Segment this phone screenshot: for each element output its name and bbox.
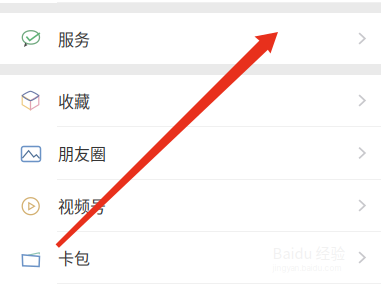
button[interactable]: 视频号 xyxy=(0,180,381,231)
button[interactable]: 服务 xyxy=(0,13,381,64)
staticText: 卡包 xyxy=(58,246,90,269)
staticText: 服务 xyxy=(58,27,90,50)
staticText: 收藏 xyxy=(58,89,90,112)
staticText: Baidu 经验 xyxy=(272,242,345,263)
button[interactable]: 收藏 xyxy=(0,75,381,126)
button[interactable]: 朋友圈 xyxy=(0,127,381,179)
button[interactable]: 卡包 xyxy=(0,232,381,283)
staticText: jingyan.baidu.com xyxy=(272,263,341,273)
staticText: 视频号 xyxy=(58,194,106,217)
staticText: 朋友圈 xyxy=(58,141,106,165)
